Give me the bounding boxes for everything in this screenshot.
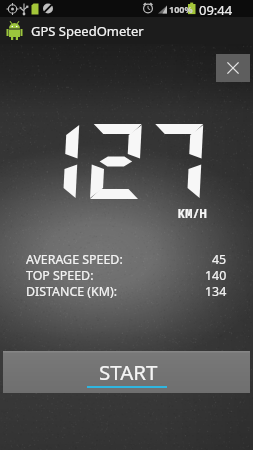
- staticText: KM/H: [178, 205, 207, 221]
- staticText: 100%: [169, 3, 193, 15]
- button[interactable]: Close: [216, 54, 250, 82]
- staticText: 140: [205, 267, 227, 283]
- staticText: 09:44: [199, 1, 233, 19]
- staticText: AVERAGE SPEED:: [26, 251, 123, 267]
- staticText: TOP SPEED:: [26, 267, 94, 283]
- button[interactable]: START: [3, 351, 250, 393]
- staticText: 45: [212, 251, 227, 267]
- staticText: GPS SpeedOmeter: [31, 22, 144, 40]
- staticText: DISTANCE (KM):: [26, 283, 118, 299]
- staticText: 134: [205, 283, 227, 299]
- staticText: START: [99, 358, 158, 386]
